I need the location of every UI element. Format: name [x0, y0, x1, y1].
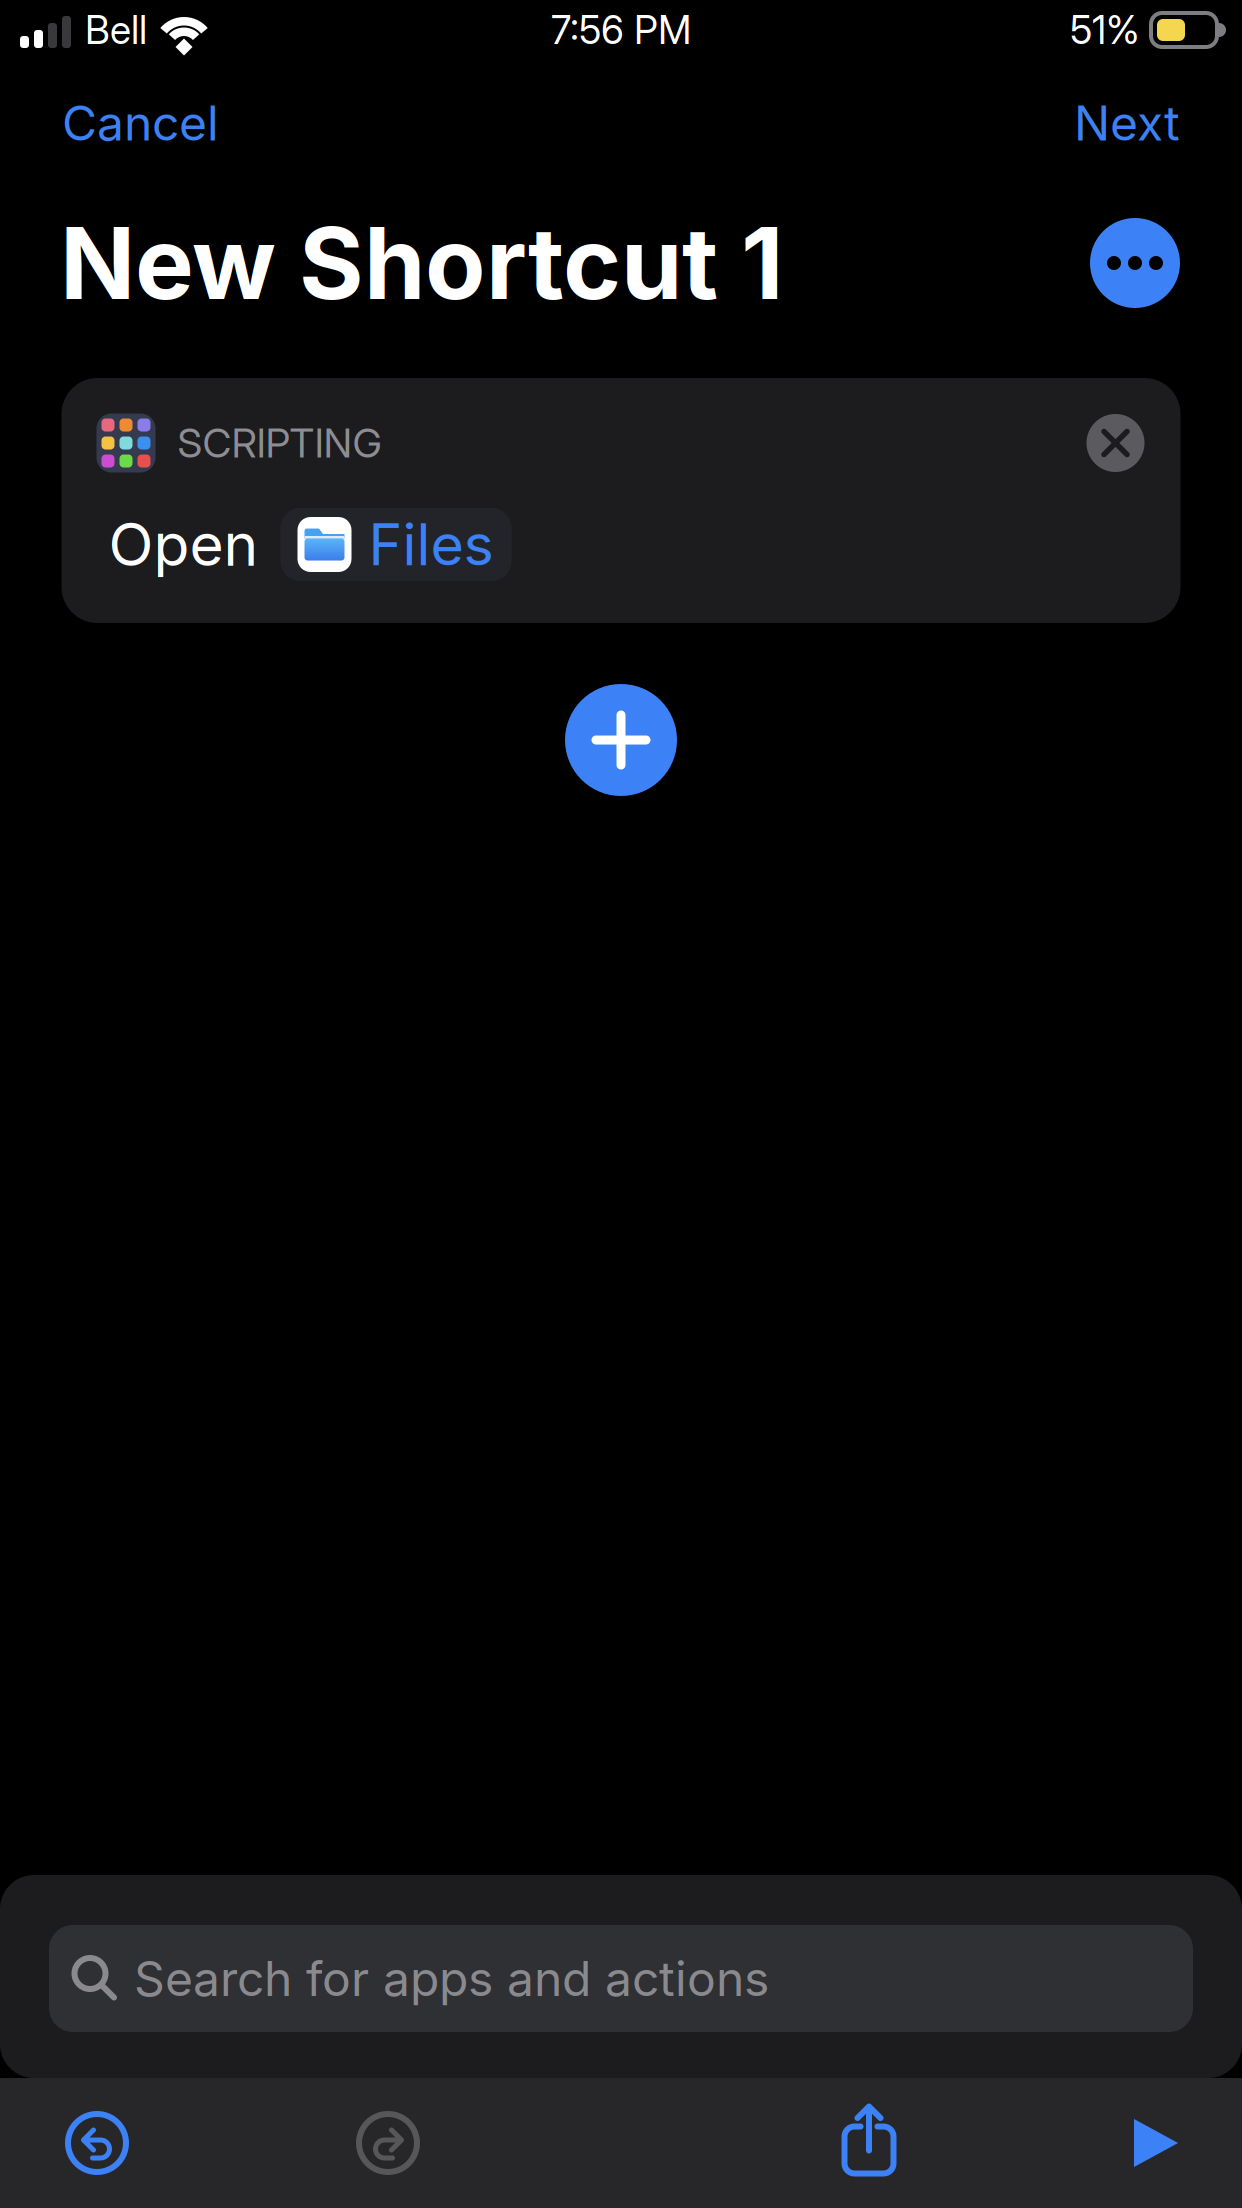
staticText: Open [108, 509, 258, 580]
button[interactable]: Undo [0, 2078, 194, 2208]
button[interactable]: Remove action [1086, 414, 1144, 472]
staticText: Bell [85, 7, 147, 53]
staticText: SCRIPTING [177, 419, 381, 467]
button[interactable]: Run [1081, 2078, 1231, 2208]
staticText: Search for apps and actions [134, 1949, 769, 2008]
button[interactable]: Add action [565, 684, 677, 796]
button[interactable]: Redo [291, 2078, 485, 2208]
button[interactable]: Cancel [50, 60, 231, 186]
staticText: 51% [1070, 7, 1140, 53]
button[interactable]: Search for apps and actions [49, 1925, 1193, 2032]
staticText: New Shortcut 1 [60, 203, 784, 323]
button[interactable]: More options [1090, 218, 1180, 308]
staticText: 7:56 PM [551, 7, 691, 53]
button[interactable]: Share [794, 2078, 944, 2208]
button[interactable]: Files [280, 508, 511, 581]
staticText: Cancel [62, 94, 219, 152]
button[interactable]: Next [1062, 60, 1192, 186]
staticText: Next [1074, 94, 1180, 152]
staticText: Files [368, 510, 493, 579]
